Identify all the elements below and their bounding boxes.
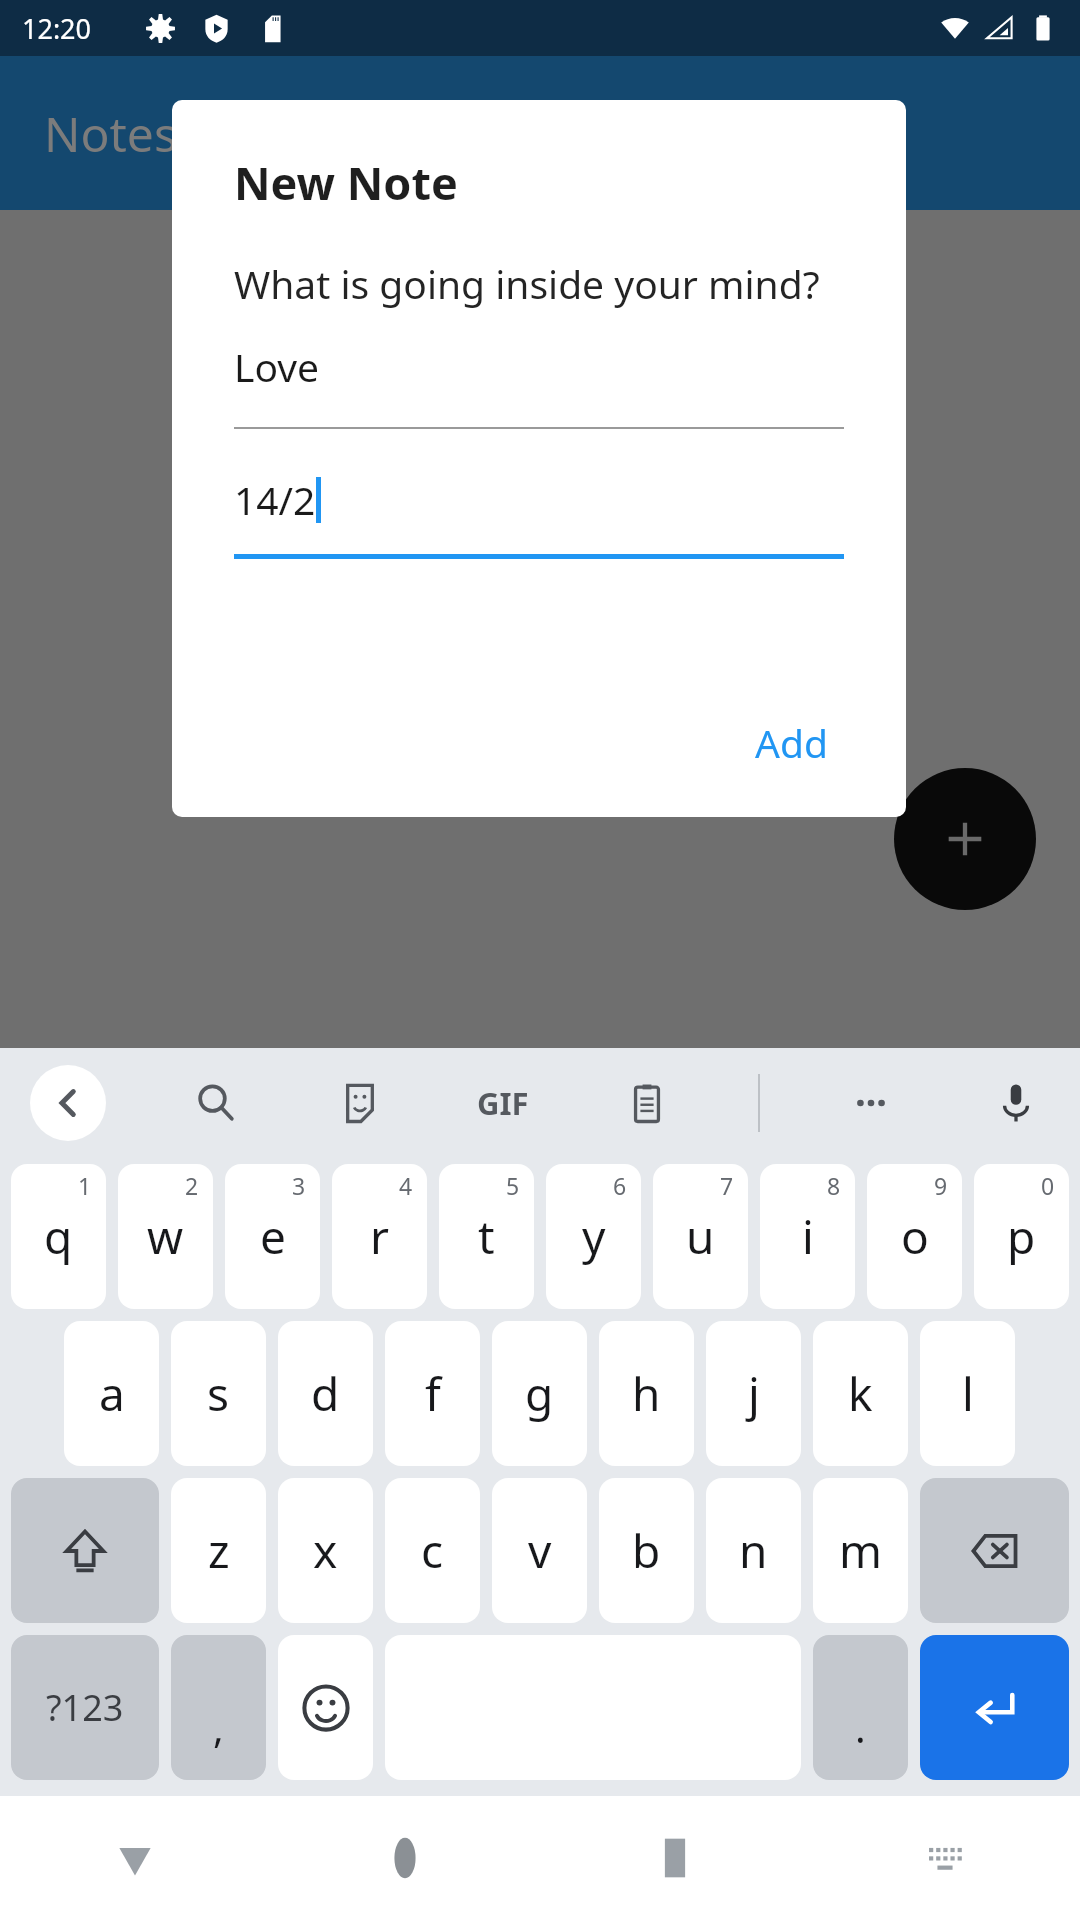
button[interactable]: More options — [837, 1069, 905, 1137]
staticText: e — [260, 1205, 286, 1268]
button[interactable]: . — [813, 1635, 908, 1780]
button[interactable]: Search — [182, 1069, 250, 1137]
button[interactable]: m — [813, 1478, 908, 1623]
button[interactable]: q — [11, 1164, 106, 1309]
button[interactable]: Back — [0, 1796, 270, 1920]
button[interactable]: GIF — [470, 1070, 536, 1136]
staticText: 0 — [1041, 1170, 1055, 1201]
staticText: w — [147, 1205, 184, 1268]
button[interactable]: n — [706, 1478, 801, 1623]
staticText: o — [901, 1205, 929, 1268]
staticText: l — [962, 1362, 974, 1425]
button[interactable]: l — [920, 1321, 1015, 1466]
button[interactable]: Home — [270, 1796, 540, 1920]
button[interactable]: Add note — [894, 768, 1036, 910]
button[interactable]: Back — [30, 1065, 106, 1141]
staticText: Add — [755, 716, 828, 769]
button[interactable]: o — [867, 1164, 962, 1309]
button[interactable]: b — [599, 1478, 694, 1623]
button[interactable]: d — [278, 1321, 373, 1466]
staticText: Love — [234, 340, 320, 393]
staticText: i — [802, 1205, 814, 1268]
button[interactable]: Backspace — [920, 1478, 1069, 1623]
staticText: 8 — [827, 1170, 841, 1201]
button[interactable]: f — [385, 1321, 480, 1466]
staticText: What is going inside your mind? — [234, 257, 820, 310]
button[interactable]: s — [171, 1321, 266, 1466]
button[interactable]: Stickers — [326, 1069, 394, 1137]
button[interactable]: g — [492, 1321, 587, 1466]
staticText: x — [313, 1519, 338, 1582]
staticText: 7 — [720, 1170, 734, 1201]
button[interactable]: Clipboard — [613, 1069, 681, 1137]
button[interactable]: t — [439, 1164, 534, 1309]
button[interactable]: x — [278, 1478, 373, 1623]
button[interactable]: Shift — [11, 1478, 159, 1623]
staticText: 2 — [185, 1170, 199, 1201]
staticText: GIF — [477, 1082, 529, 1124]
staticText: y — [582, 1205, 606, 1268]
button[interactable]: w — [118, 1164, 213, 1309]
button[interactable]: h — [599, 1321, 694, 1466]
staticText: f — [425, 1362, 441, 1425]
button[interactable]: p — [974, 1164, 1069, 1309]
button[interactable]: a — [64, 1321, 159, 1466]
button[interactable]: Enter — [920, 1635, 1069, 1780]
button[interactable]: 14/2 — [234, 473, 844, 559]
staticText: 5 — [506, 1170, 520, 1201]
button[interactable]: r — [332, 1164, 427, 1309]
button[interactable]: Recents — [540, 1796, 810, 1920]
staticText: . — [855, 1700, 866, 1754]
button[interactable]: ?123 — [11, 1635, 159, 1780]
button[interactable]: Emoji — [278, 1635, 373, 1780]
staticText: 1 — [78, 1170, 92, 1201]
staticText: c — [421, 1519, 444, 1582]
staticText: j — [748, 1362, 760, 1425]
staticText: Notes — [44, 101, 177, 166]
button[interactable]: j — [706, 1321, 801, 1466]
staticText: 12:20 — [22, 10, 92, 47]
staticText: r — [370, 1205, 389, 1268]
staticText: 3 — [292, 1170, 306, 1201]
staticText: z — [208, 1519, 230, 1582]
staticText: g — [525, 1362, 554, 1425]
button[interactable]: Add — [739, 702, 844, 783]
staticText: k — [848, 1362, 873, 1425]
button[interactable]: k — [813, 1321, 908, 1466]
staticText: , — [213, 1700, 224, 1754]
staticText: d — [311, 1362, 340, 1425]
button[interactable]: Switch keyboard — [810, 1796, 1080, 1920]
staticText: a — [99, 1362, 125, 1425]
button[interactable]: i — [760, 1164, 855, 1309]
staticText: p — [1007, 1205, 1036, 1268]
button[interactable]: Voice input — [982, 1069, 1050, 1137]
staticText: ?123 — [46, 1683, 124, 1732]
staticText: 4 — [399, 1170, 413, 1201]
button[interactable]: e — [225, 1164, 320, 1309]
staticText: v — [528, 1519, 552, 1582]
staticText: New Note — [234, 152, 458, 213]
button[interactable]: , — [171, 1635, 266, 1780]
button[interactable]: Love — [234, 340, 844, 429]
button[interactable]: y — [546, 1164, 641, 1309]
staticText: t — [478, 1205, 495, 1268]
staticText: m — [839, 1519, 883, 1582]
button[interactable]: v — [492, 1478, 587, 1623]
staticText: 6 — [613, 1170, 627, 1201]
staticText: h — [632, 1362, 661, 1425]
staticText: n — [739, 1519, 768, 1582]
button[interactable]: c — [385, 1478, 480, 1623]
staticText: q — [44, 1205, 73, 1268]
button[interactable]: u — [653, 1164, 748, 1309]
staticText: s — [207, 1362, 230, 1425]
staticText: 9 — [934, 1170, 948, 1201]
staticText: b — [632, 1519, 661, 1582]
button[interactable]: z — [171, 1478, 266, 1623]
staticText: 14/2 — [234, 473, 316, 526]
staticText: u — [686, 1205, 715, 1268]
